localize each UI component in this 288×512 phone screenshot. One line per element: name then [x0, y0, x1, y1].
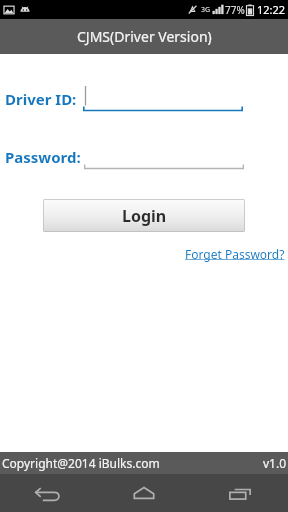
- staticText: CJMS(Driver Version): [77, 27, 212, 46]
- staticText: Copyright@2014 iBulks.com: [2, 455, 160, 471]
- staticText: 12:22: [257, 2, 286, 17]
- button[interactable]: [83, 85, 243, 113]
- staticText: Login: [122, 205, 167, 227]
- button[interactable]: Forget Password?: [182, 244, 288, 264]
- staticText: 77%: [225, 3, 245, 17]
- button[interactable]: Back: [0, 474, 96, 512]
- button[interactable]: [84, 143, 244, 171]
- staticText: v1.0: [263, 455, 287, 471]
- button[interactable]: Recent apps: [192, 474, 288, 512]
- staticText: 3G: [201, 5, 211, 15]
- staticText: Password:: [5, 147, 81, 167]
- button[interactable]: Login: [43, 199, 245, 232]
- staticText: Forget Password?: [185, 246, 285, 262]
- staticText: Driver ID:: [5, 89, 77, 109]
- button[interactable]: Home: [96, 474, 192, 512]
